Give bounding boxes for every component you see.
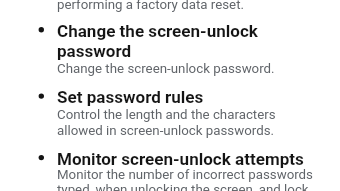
staticText: typed, when unlocking the screen, and lo… [57,182,309,191]
button[interactable] [28,84,318,143]
staticText: Monitor the number of incorrect password… [57,167,313,183]
staticText: Change the screen-unlock password. [57,61,275,77]
button[interactable] [28,17,318,80]
button[interactable] [28,145,318,191]
staticText: allowed in screen-unlock passwords. [57,123,275,139]
staticText: password [57,41,132,61]
staticText: Control the length and the characters [57,107,276,123]
staticText: Set password rules [57,87,204,107]
staticText: Monitor screen-unlock attempts [57,149,304,169]
staticText: Change the screen-unlock [57,21,258,41]
staticText: performing a factory data reset. [57,0,245,13]
